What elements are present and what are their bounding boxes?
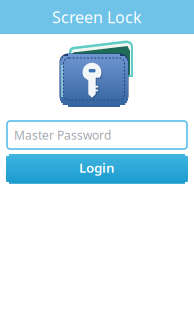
staticText: Login <box>79 159 115 176</box>
staticText: Master Password <box>14 127 111 143</box>
staticText: Screen Lock <box>52 6 142 28</box>
button[interactable]: Master Password <box>7 121 187 149</box>
button[interactable]: Login <box>6 154 188 181</box>
